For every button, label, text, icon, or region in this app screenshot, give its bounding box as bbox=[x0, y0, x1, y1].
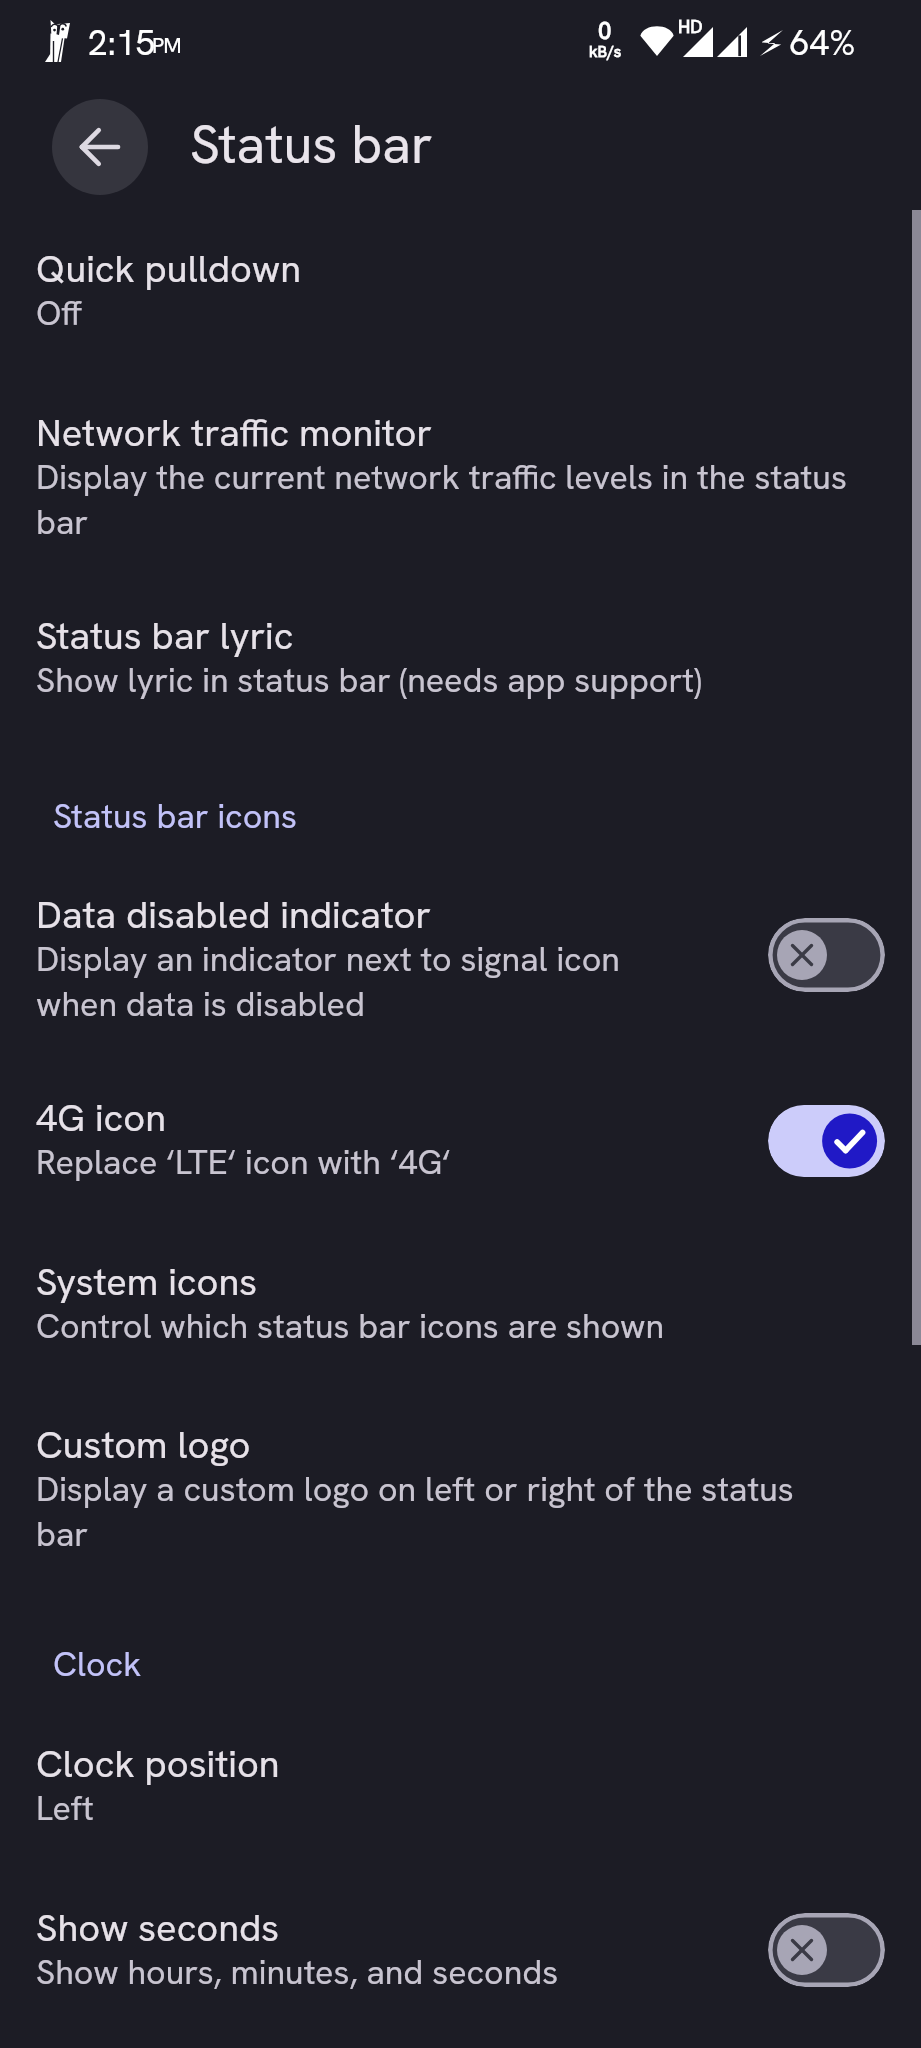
staticText: Show hours, minutes, and seconds bbox=[36, 1950, 559, 1994]
staticText: System icons bbox=[36, 1257, 258, 1307]
staticText: HD bbox=[678, 15, 703, 38]
staticText: 2:15 bbox=[88, 20, 156, 66]
button[interactable]: Disabled bbox=[768, 1913, 885, 1987]
staticText: Display the current network traffic leve… bbox=[36, 455, 848, 544]
staticText: Data disabled indicator bbox=[36, 890, 431, 940]
button[interactable] bbox=[0, 370, 921, 555]
staticText: Status bar icons bbox=[53, 794, 297, 838]
staticText: Status bar bbox=[190, 110, 433, 179]
staticText: Display a custom logo on left or right o… bbox=[36, 1467, 848, 1556]
button[interactable] bbox=[0, 555, 921, 720]
staticText: 64% bbox=[790, 20, 856, 66]
button[interactable] bbox=[0, 1875, 921, 2025]
button[interactable] bbox=[0, 855, 921, 1055]
button[interactable]: Enabled bbox=[768, 1104, 885, 1178]
button[interactable]: Disabled bbox=[768, 918, 885, 992]
staticText: Replace ‘LTE‘ icon with ‘4G‘ bbox=[36, 1140, 451, 1184]
staticText: PM bbox=[152, 31, 181, 60]
button[interactable] bbox=[0, 210, 921, 370]
staticText: Display an indicator next to signal icon… bbox=[36, 937, 676, 1026]
staticText: Clock bbox=[53, 1642, 142, 1686]
button[interactable] bbox=[0, 1370, 921, 1560]
staticText: Quick pulldown bbox=[36, 244, 302, 294]
staticText: Control which status bar icons are shown bbox=[36, 1304, 665, 1348]
staticText: Show lyric in status bar (needs app supp… bbox=[36, 658, 702, 702]
staticText: Left bbox=[36, 1786, 94, 1830]
staticText: Clock position bbox=[36, 1739, 280, 1789]
button[interactable] bbox=[0, 1215, 921, 1370]
button[interactable] bbox=[0, 1060, 921, 1222]
staticText: Status bar lyric bbox=[36, 611, 294, 661]
staticText: 4G icon bbox=[36, 1093, 166, 1143]
staticText: Show seconds bbox=[36, 1903, 280, 1953]
staticText: Custom logo bbox=[36, 1420, 251, 1470]
button[interactable]: Back bbox=[52, 99, 148, 195]
button[interactable] bbox=[0, 1700, 921, 1860]
staticText: kB/s bbox=[589, 41, 622, 62]
staticText: Network traffic monitor bbox=[36, 408, 432, 458]
staticText: Off bbox=[36, 291, 82, 335]
staticText: 0 bbox=[598, 15, 612, 46]
